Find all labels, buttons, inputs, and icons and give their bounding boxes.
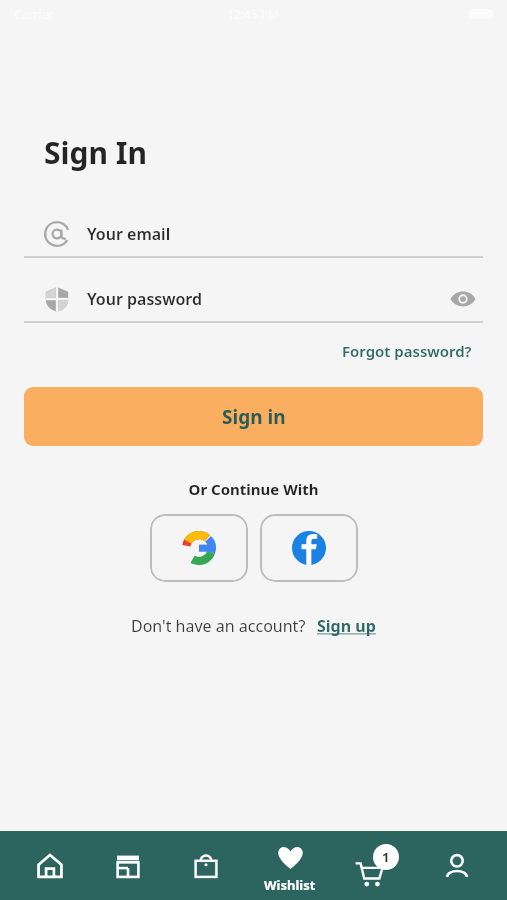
staticText: Sign in: [222, 404, 286, 430]
button[interactable]: Sign in: [24, 387, 483, 446]
staticText: 1: [382, 848, 390, 866]
button[interactable]: Sign in with Google: [150, 514, 248, 582]
staticText: Sign In: [44, 132, 147, 173]
staticText: Your password: [87, 288, 202, 310]
staticText: Your email: [87, 223, 171, 245]
button[interactable]: Forgot password?: [340, 337, 474, 365]
staticText: Don't have an account?: [131, 615, 306, 637]
button[interactable]: Bag: [178, 831, 234, 900]
button[interactable]: Store: [100, 831, 156, 900]
button[interactable]: Show password: [443, 279, 483, 319]
button[interactable]: Sign in with Facebook: [260, 514, 358, 582]
staticText: Forgot password?: [342, 341, 472, 361]
staticText: Or Continue With: [0, 479, 507, 499]
staticText: Wishlist: [264, 876, 316, 894]
button[interactable]: Cart, 1 item: [347, 831, 407, 900]
button[interactable]: Home: [22, 831, 78, 900]
button[interactable]: Wishlist: [255, 831, 325, 900]
button[interactable]: Sign up: [317, 615, 376, 637]
button[interactable]: Profile: [429, 831, 485, 900]
button[interactable]: Your password: [24, 276, 483, 323]
button[interactable]: Your email: [24, 211, 483, 258]
staticText: Sign up: [317, 615, 376, 637]
